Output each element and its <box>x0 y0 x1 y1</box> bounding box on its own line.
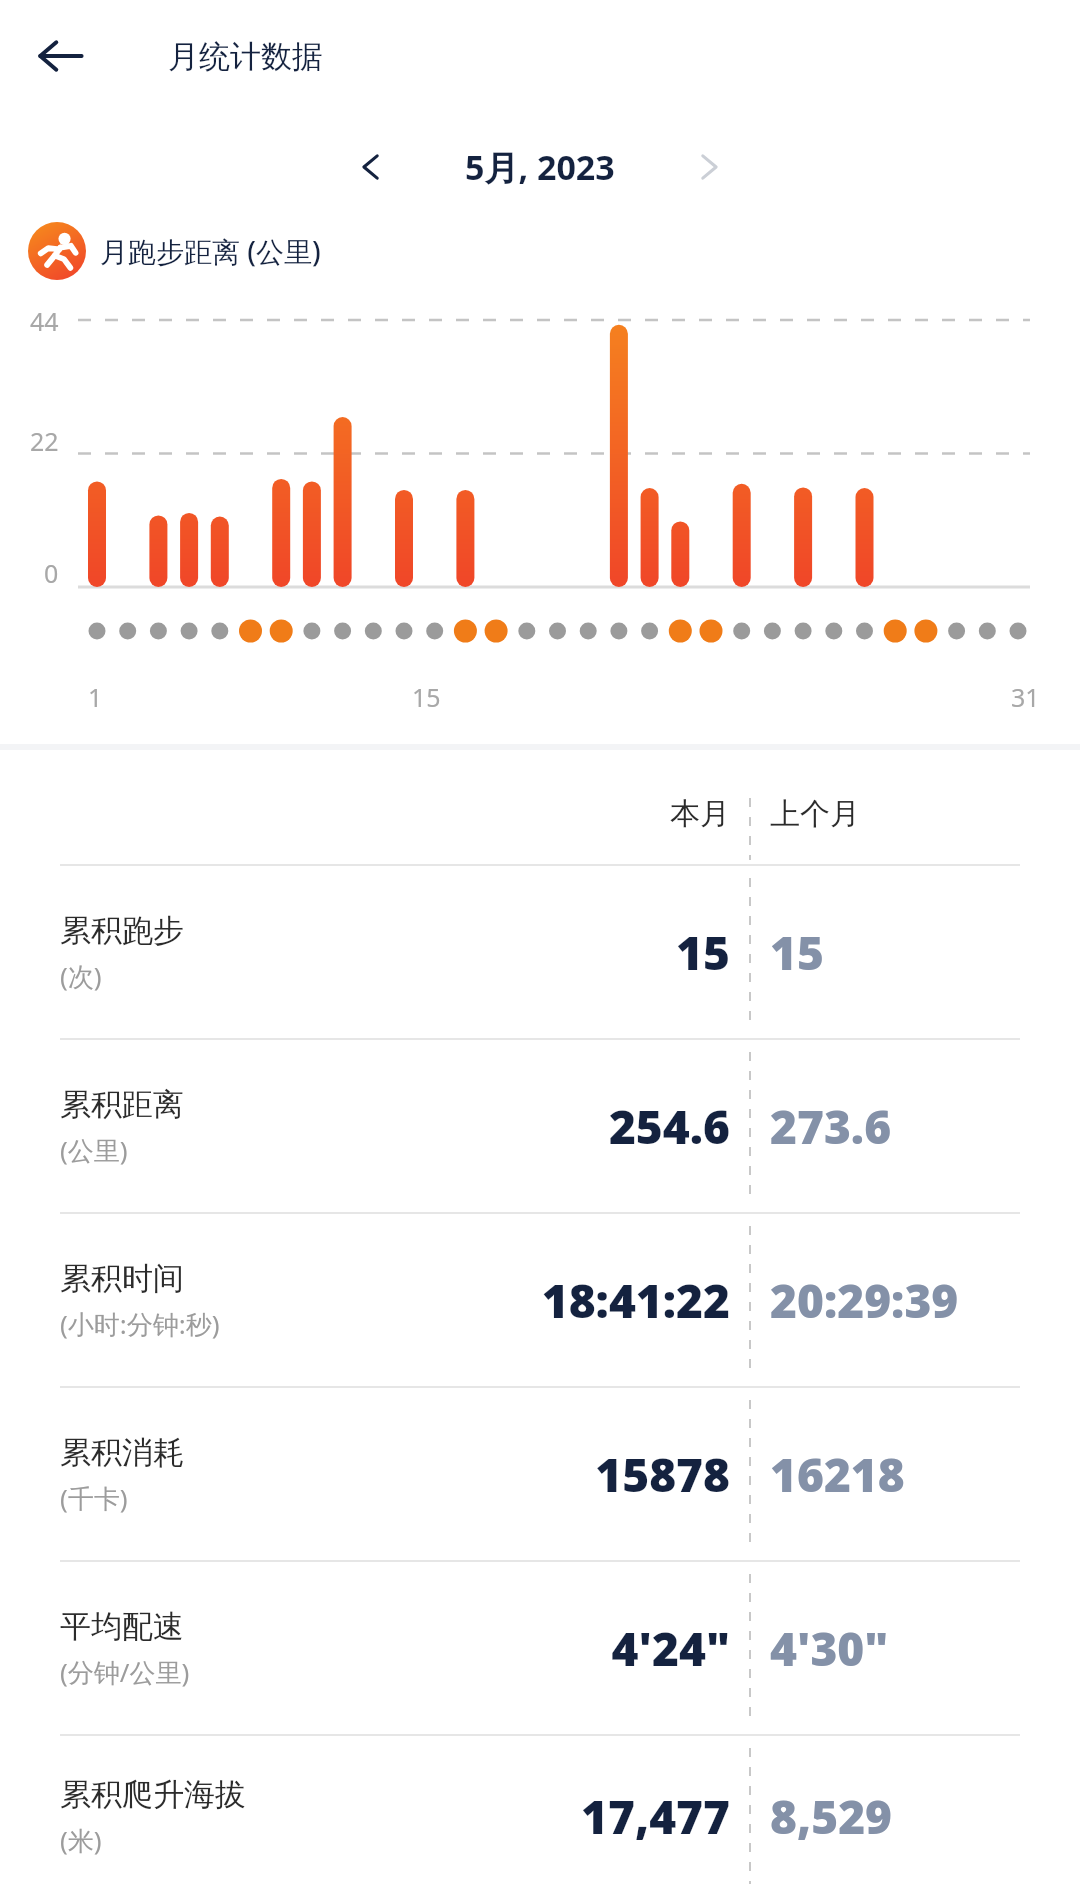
staticText: 累积距离 <box>60 1085 184 1124</box>
staticText: 累积消耗 <box>60 1433 184 1472</box>
staticText: 累积跑步 <box>60 911 184 950</box>
staticText: 0 <box>44 556 59 590</box>
staticText: 273.6 <box>770 1095 892 1158</box>
staticText: 5月, 2023 <box>465 144 615 190</box>
staticText: 15 <box>676 921 730 984</box>
staticText: (次) <box>60 958 102 994</box>
staticText: 15878 <box>595 1443 730 1506</box>
staticText: 18:41:22 <box>541 1269 730 1332</box>
staticText: 上个月 <box>770 795 860 833</box>
staticText: (千卡) <box>60 1480 128 1516</box>
button[interactable]: 累积消耗 <box>24 1388 1056 1560</box>
button[interactable]: 平均配速 <box>24 1562 1056 1734</box>
staticText: 8,529 <box>770 1785 893 1848</box>
button[interactable]: 累积时间 <box>24 1214 1056 1386</box>
button[interactable]: 累积跑步 <box>24 866 1056 1038</box>
staticText: 15 <box>770 921 824 984</box>
staticText: 254.6 <box>608 1095 730 1158</box>
staticText: 月统计数据 <box>168 37 323 76</box>
staticText: (公里) <box>60 1132 128 1168</box>
button[interactable]: 累积距离 <box>24 1040 1056 1212</box>
staticText: (米) <box>60 1822 102 1858</box>
staticText: 20:29:39 <box>770 1269 959 1332</box>
staticText: 31 <box>1011 680 1040 714</box>
staticText: 44 <box>30 304 59 338</box>
staticText: 本月 <box>670 795 730 833</box>
staticText: 4'24" <box>611 1617 730 1680</box>
staticText: 16218 <box>770 1443 905 1506</box>
button[interactable]: 累积爬升海拔 <box>24 1736 1056 1896</box>
staticText: 累积时间 <box>60 1259 184 1298</box>
staticText: 平均配速 <box>60 1607 184 1646</box>
staticText: (分钟/公里) <box>60 1654 190 1690</box>
staticText: 17,477 <box>581 1785 730 1848</box>
staticText: 22 <box>30 424 59 458</box>
staticText: 15 <box>412 680 441 714</box>
staticText: 月跑步距离 (公里) <box>100 232 321 270</box>
button[interactable]: Back <box>22 18 98 94</box>
staticText: 累积爬升海拔 <box>60 1775 246 1814</box>
staticText: (小时:分钟:秒) <box>60 1306 220 1342</box>
staticText: 4'30" <box>770 1617 889 1680</box>
button[interactable]: Previous month <box>333 130 407 204</box>
staticText: 1 <box>88 680 103 714</box>
button[interactable]: Next month <box>673 130 747 204</box>
